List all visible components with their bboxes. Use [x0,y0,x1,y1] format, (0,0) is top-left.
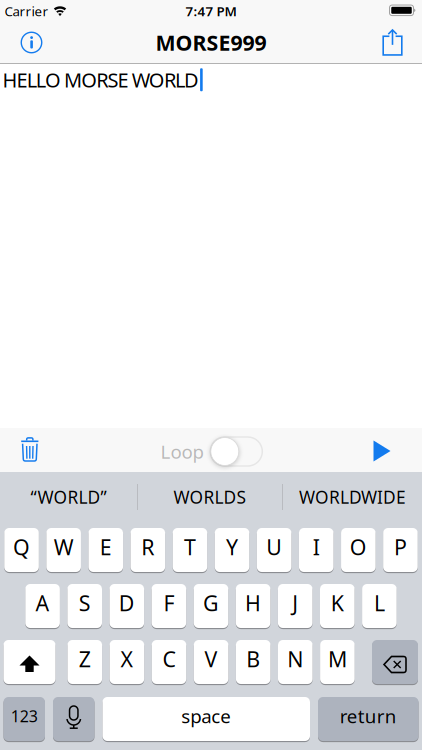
button[interactable]: R [130,528,165,572]
button[interactable]: Y [215,528,249,572]
staticText: G [203,589,219,617]
staticText: Carrier [4,2,48,20]
button[interactable]: F [152,584,186,628]
button[interactable]: C [152,640,186,684]
button[interactable]: Delete [8,428,52,471]
staticText: E [100,533,112,561]
button[interactable]: E [88,528,123,572]
button[interactable]: WORLDWIDE [283,472,422,522]
button[interactable]: V [194,640,228,684]
button[interactable]: Shift [3,640,55,684]
staticText: T [184,533,196,561]
staticText: return [340,704,397,728]
staticText: A [36,589,50,617]
staticText: H [245,589,261,617]
button[interactable]: K [320,584,355,628]
staticText: M [328,645,347,673]
staticText: space [181,704,231,728]
staticText: C [162,645,175,673]
button[interactable]: Play [362,429,402,472]
staticText: W [54,533,74,561]
button[interactable]: O [341,528,376,572]
staticText: “WORLD” [30,485,106,508]
button[interactable]: Delete [372,640,418,684]
button[interactable]: Share [382,29,422,56]
button[interactable]: L [362,584,397,628]
button[interactable]: I [299,528,333,572]
staticText: WORLDWIDE [299,485,406,508]
button[interactable]: D [109,584,144,628]
button[interactable]: Dictate [53,697,94,741]
staticText: V [205,645,218,673]
button[interactable]: U [257,528,291,572]
button[interactable]: Loop [210,437,262,466]
button[interactable]: H [236,584,270,628]
staticText: R [141,533,154,561]
staticText: Q [13,533,30,561]
staticText: J [292,589,298,617]
staticText: B [246,645,260,673]
staticText: I [313,533,320,561]
staticText: 123 [11,705,38,727]
staticText: D [119,589,135,617]
button[interactable]: A [25,584,60,628]
button[interactable]: W [46,528,81,572]
staticText: O [350,533,367,561]
button[interactable]: return [318,697,418,741]
staticText: 7:47 PM [185,2,236,20]
staticText: MORSE999 [155,28,266,57]
button[interactable]: J [278,584,312,628]
button[interactable]: space [102,697,310,741]
button[interactable]: X [110,640,144,684]
staticText: U [266,533,282,561]
button[interactable]: G [194,584,228,628]
staticText: Loop [160,439,203,464]
staticText: P [394,533,407,561]
button[interactable]: 123 [3,697,45,741]
button[interactable]: Q [4,528,39,572]
button[interactable]: M [320,640,355,684]
staticText: WORLDS [173,485,246,508]
button[interactable]: “WORLD” [0,472,137,522]
button[interactable]: B [236,640,270,684]
staticText: Y [226,533,238,561]
staticText: S [79,589,91,617]
staticText: HELLO MORSE WORLD [2,66,199,93]
staticText: L [374,589,385,617]
staticText: X [120,645,133,673]
button[interactable]: T [173,528,207,572]
button[interactable]: WORLDS [138,472,282,522]
staticText: N [287,645,303,673]
button[interactable]: N [278,640,313,684]
button[interactable]: Z [67,640,102,684]
button[interactable]: S [67,584,102,628]
staticText: F [163,589,174,617]
staticText: K [331,589,344,617]
button[interactable]: P [383,528,418,572]
staticText: Z [79,645,91,673]
button[interactable]: Info [0,32,42,53]
